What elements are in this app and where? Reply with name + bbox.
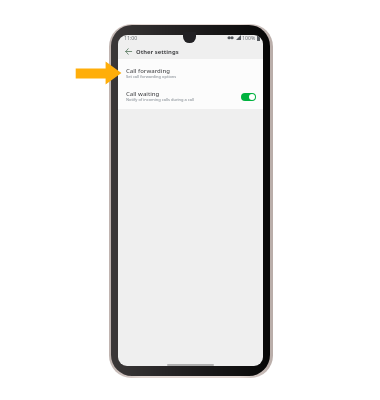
- button[interactable]: Navigate up: [120, 45, 136, 58]
- button[interactable]: Call waiting: [118, 85, 263, 108]
- staticText: Call waiting: [126, 90, 160, 98]
- staticText: Call forwarding: [126, 67, 170, 75]
- staticText: 11:00: [124, 35, 138, 41]
- button[interactable]: Toggle call waiting: [241, 93, 256, 101]
- staticText: Other settings: [136, 48, 179, 56]
- staticText: Set call forwarding options: [126, 74, 177, 79]
- staticText: Notify of incoming calls during a call: [126, 97, 195, 102]
- button[interactable]: Call forwarding: [118, 62, 263, 85]
- staticText: 100%: [242, 35, 256, 41]
